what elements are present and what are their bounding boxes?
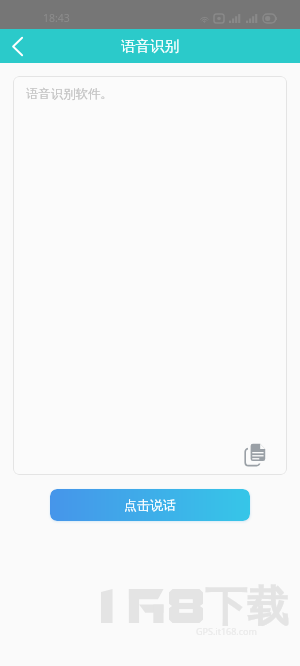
button[interactable]: Copy text [244,443,266,467]
button[interactable]: Back [0,29,34,63]
staticText: 18:43 [43,11,70,25]
button[interactable]: 语音识别软件。 [13,76,287,475]
staticText: 点击说话 [124,497,176,513]
staticText: 语音识别软件。 [26,86,113,102]
staticText: GPS.it168.com [196,625,257,637]
staticText: 下载 [205,581,289,634]
staticText: 语音识别 [121,37,179,55]
button[interactable]: 点击说话 [50,489,250,521]
